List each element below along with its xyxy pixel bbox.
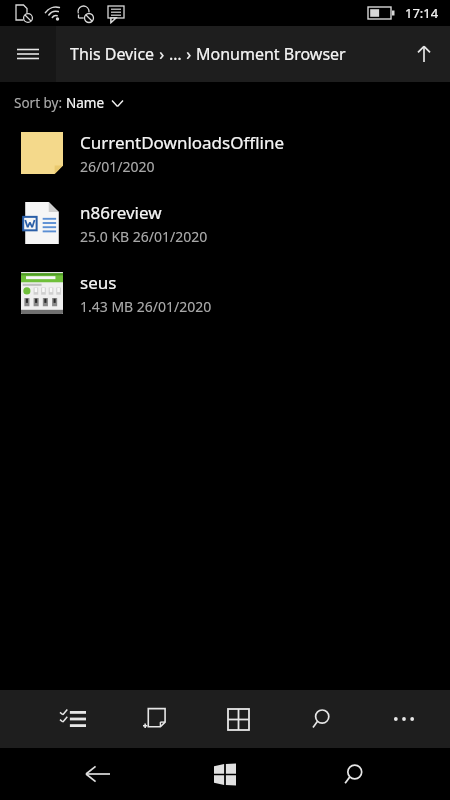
staticText: seus [80,271,117,294]
staticText: 17:14 [405,4,439,22]
button[interactable]: Menu [0,26,56,82]
staticText: Monument Browser [196,43,346,65]
staticText: › [182,43,196,65]
button[interactable]: CurrentDownloadsOffline [0,118,450,188]
button[interactable]: This Device [70,43,346,65]
staticText: n86review [80,201,162,224]
button[interactable]: Start [195,748,255,800]
staticText: Name [66,94,105,112]
staticText: 25.0 KB 26/01/2020 [80,227,208,246]
staticText: › [155,43,169,65]
button[interactable]: Change view [212,693,264,745]
button[interactable]: Up one level [398,26,450,82]
staticText: 1.43 MB 26/01/2020 [80,297,212,316]
button[interactable]: New folder [129,693,181,745]
button[interactable]: More options [378,693,430,745]
staticText: This Device [70,43,155,65]
button[interactable]: seus [0,258,450,328]
staticText: CurrentDownloadsOffline [80,131,285,154]
staticText: Sort by: [14,94,66,112]
button[interactable]: Sort by: [14,94,123,112]
staticText: … [169,43,182,65]
button[interactable]: Select items [47,693,99,745]
button[interactable]: Search [323,748,383,800]
button[interactable]: n86review [0,188,450,258]
staticText: 26/01/2020 [80,157,155,176]
button[interactable]: Search [295,693,347,745]
button[interactable]: Back [68,748,128,800]
